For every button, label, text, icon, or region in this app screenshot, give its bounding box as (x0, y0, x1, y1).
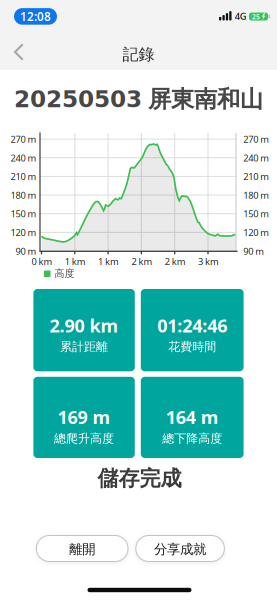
staticText: 1 km (65, 255, 86, 268)
staticText: 花費時間 (168, 339, 216, 354)
button[interactable]: 12:08 (14, 8, 57, 25)
staticText: 180 m (243, 189, 269, 201)
staticText: 90 m (243, 245, 264, 257)
staticText: 169 m (58, 405, 111, 429)
staticText: 3 km (198, 255, 219, 268)
staticText: 4G (235, 10, 247, 22)
staticText: 分享成就 (154, 541, 206, 557)
staticText: 2 km (131, 255, 152, 268)
staticText: 12:08 (20, 8, 51, 24)
staticText: 高度 (54, 267, 74, 280)
button[interactable]: 離開 (36, 535, 128, 561)
staticText: 1 km (98, 255, 119, 268)
staticText: 210 m (243, 170, 269, 183)
staticText: 240 m (243, 152, 269, 164)
staticText: 記錄 (122, 44, 154, 64)
staticText: 90 m (15, 245, 36, 257)
staticText: 25 (252, 12, 260, 21)
staticText: 屏東南和山 (148, 85, 263, 114)
staticText: 離開 (69, 541, 95, 557)
staticText: 120 m (10, 226, 36, 239)
button[interactable] (0, 0, 277, 600)
staticText: 164 m (166, 405, 219, 429)
button[interactable] (141, 289, 244, 371)
staticText: 120 m (243, 226, 269, 239)
staticText: 總爬升高度 (54, 431, 114, 446)
staticText: 180 m (10, 189, 36, 201)
button[interactable] (33, 289, 135, 371)
staticText: 240 m (10, 152, 36, 164)
staticText: 儲存完成 (97, 465, 181, 492)
staticText: 210 m (10, 170, 36, 183)
staticText: 20250503 (14, 86, 142, 113)
staticText: 2.90 km (50, 313, 119, 338)
staticText: 0 km (31, 255, 52, 268)
staticText: 01:24:46 (157, 313, 227, 338)
staticText: 累計距離 (60, 339, 108, 354)
button[interactable] (141, 377, 244, 458)
button[interactable] (33, 377, 135, 458)
staticText: 總下降高度 (162, 431, 222, 446)
staticText: 150 m (243, 207, 269, 220)
button[interactable]: 分享成就 (136, 535, 224, 561)
staticText: 150 m (10, 207, 36, 220)
staticText: 270 m (243, 133, 269, 145)
staticText: 270 m (10, 133, 36, 145)
staticText: 2 km (165, 255, 186, 268)
